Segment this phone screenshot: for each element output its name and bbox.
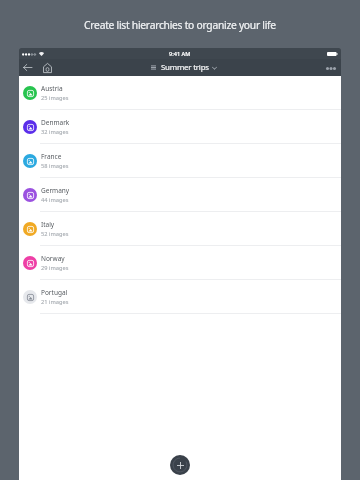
staticText: Create list hierarchies to organize your… [0,18,360,32]
staticText: 25 images [41,94,69,102]
staticText: France [41,152,62,161]
staticText: 52 images [41,230,69,238]
button[interactable]: Home [41,61,54,74]
button[interactable]: Back [21,61,34,74]
button[interactable]: Germany [19,178,341,212]
staticText: 32 images [41,128,69,136]
button[interactable]: Norway [19,246,341,280]
button[interactable]: Austria [19,76,341,110]
staticText: Denmark [41,118,70,127]
button[interactable]: Add [170,455,190,475]
staticText: Portugal [41,288,68,297]
staticText: Germany [41,186,70,195]
button[interactable]: Portugal [19,280,341,314]
staticText: 21 images [41,298,69,306]
staticText: Austria [41,84,63,93]
staticText: 29 images [41,264,69,272]
staticText: 58 images [41,162,69,170]
staticText: 44 images [41,196,69,204]
staticText: 9:41 AM [169,50,191,58]
button[interactable]: Denmark [19,110,341,144]
staticText: Italy [41,220,55,229]
staticText: Norway [41,254,65,263]
button[interactable]: France [19,144,341,178]
button[interactable]: More options [324,61,338,75]
staticText: Summer trips [161,62,209,73]
button[interactable]: Italy [19,212,341,246]
